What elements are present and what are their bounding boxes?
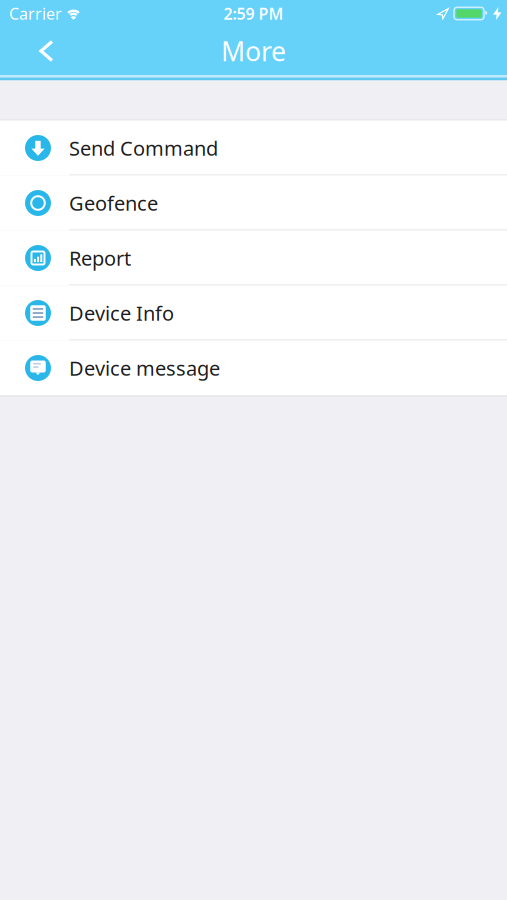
button[interactable]: Send Command [0, 120, 507, 175]
staticText: 2:59 PM [223, 3, 283, 24]
button[interactable]: Device message [0, 340, 507, 395]
staticText: More [221, 33, 286, 69]
staticText: Send Command [69, 135, 218, 161]
staticText: Device message [69, 355, 220, 381]
button[interactable]: Device Info [0, 285, 507, 340]
button[interactable]: Back [0, 40, 54, 61]
staticText: Device Info [69, 300, 174, 326]
staticText: Carrier [9, 3, 62, 24]
staticText: Report [69, 245, 131, 271]
button[interactable]: Geofence [0, 175, 507, 230]
button[interactable]: Report [0, 230, 507, 285]
staticText: Geofence [69, 190, 158, 216]
